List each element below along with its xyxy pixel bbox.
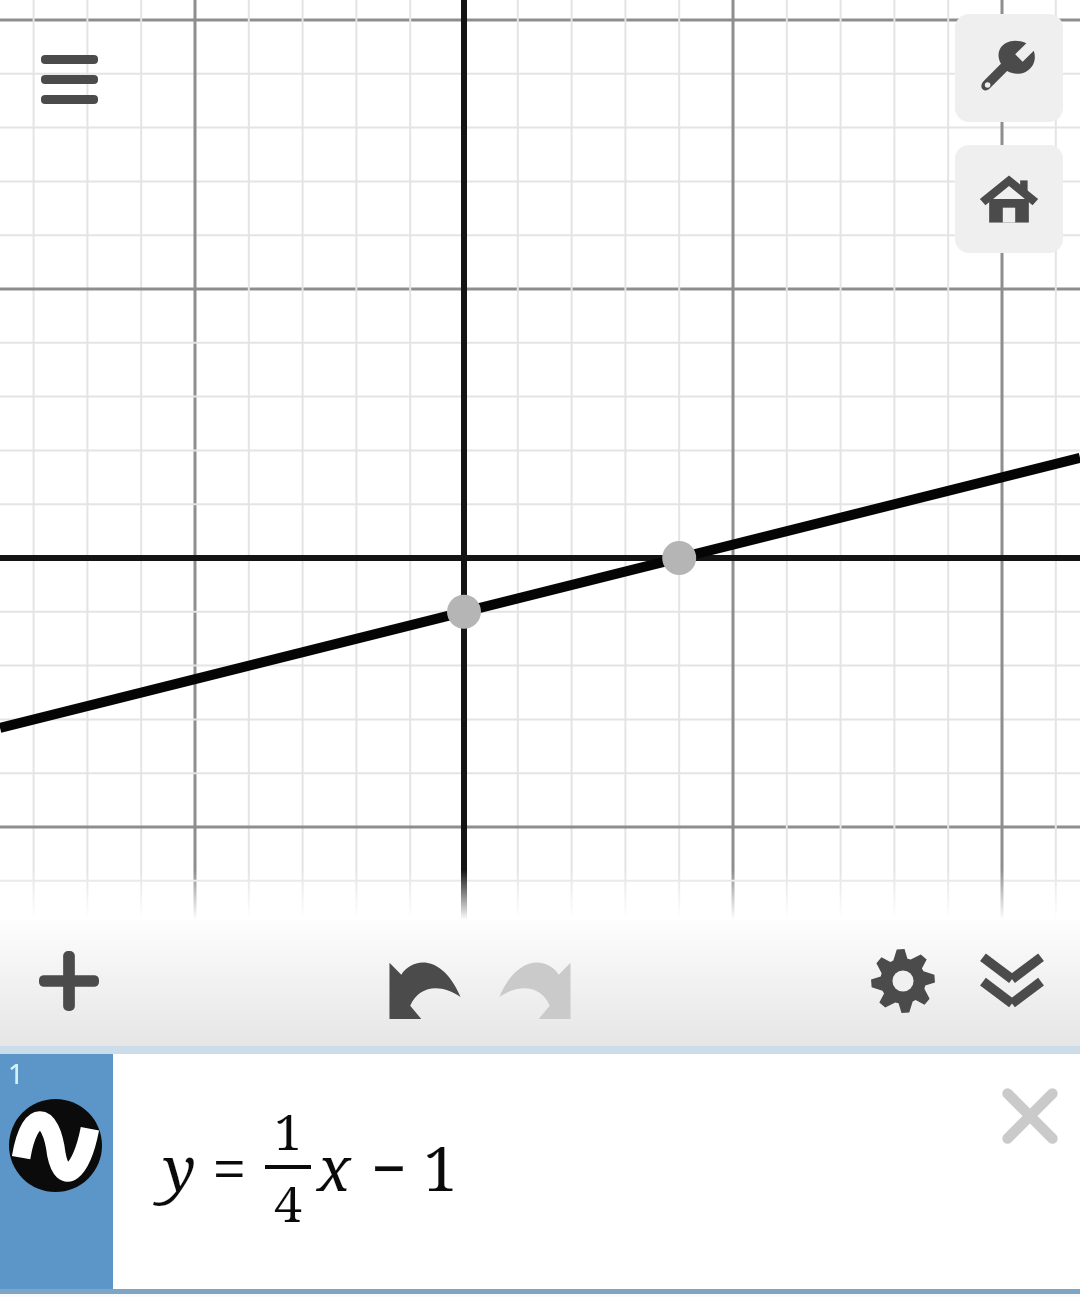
button[interactable]: Home bbox=[955, 145, 1063, 253]
staticText: 4 bbox=[274, 1169, 302, 1237]
button[interactable]: Hide keypad bbox=[962, 944, 1062, 1026]
button[interactable]: Settings bbox=[853, 940, 953, 1022]
button[interactable]: Redo bbox=[485, 947, 585, 1029]
staticText: x bbox=[317, 1125, 351, 1209]
button[interactable]: Add expression bbox=[19, 940, 119, 1022]
staticText: 1 bbox=[8, 1054, 25, 1092]
staticText: 1 bbox=[423, 1125, 458, 1209]
button[interactable]: Delete expression bbox=[980, 1066, 1080, 1166]
staticText: = bbox=[212, 1125, 247, 1209]
button[interactable]: Graph tools bbox=[955, 14, 1063, 122]
button[interactable]: Toggle curve visibility bbox=[0, 1054, 113, 1289]
staticText: 1 bbox=[274, 1097, 302, 1165]
button[interactable]: Menu bbox=[21, 31, 118, 128]
button[interactable]: Undo bbox=[375, 947, 475, 1029]
staticText: y bbox=[163, 1125, 196, 1209]
staticText: − bbox=[371, 1125, 407, 1209]
